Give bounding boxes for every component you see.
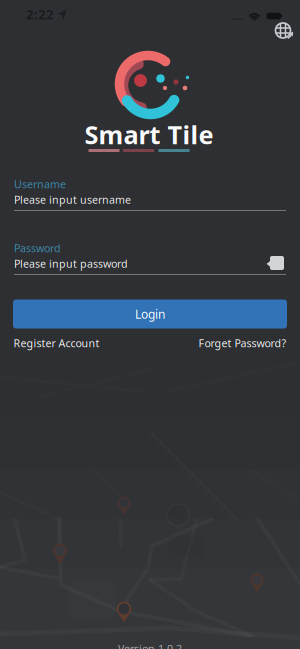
button[interactable]: Show password [0,0,300,649]
staticText: Version 1.0.2 [118,641,182,649]
staticText: Username [14,177,66,191]
staticText: Login [135,306,165,322]
button[interactable]: Language [0,0,300,649]
staticText: Smart Tile [84,118,213,151]
staticText: Password [14,241,61,255]
button[interactable]: Please input password [14,255,286,271]
button[interactable]: Login [13,299,287,328]
button[interactable]: Please input username [14,191,286,207]
staticText: Please input username [14,192,131,207]
button[interactable]: Forget Password? [198,336,286,350]
staticText: Register Account [13,336,99,350]
button[interactable]: Register Account [13,336,99,350]
staticText: Please input password [14,256,128,271]
staticText: Forget Password? [198,336,286,350]
staticText: 2:22 [26,5,54,23]
